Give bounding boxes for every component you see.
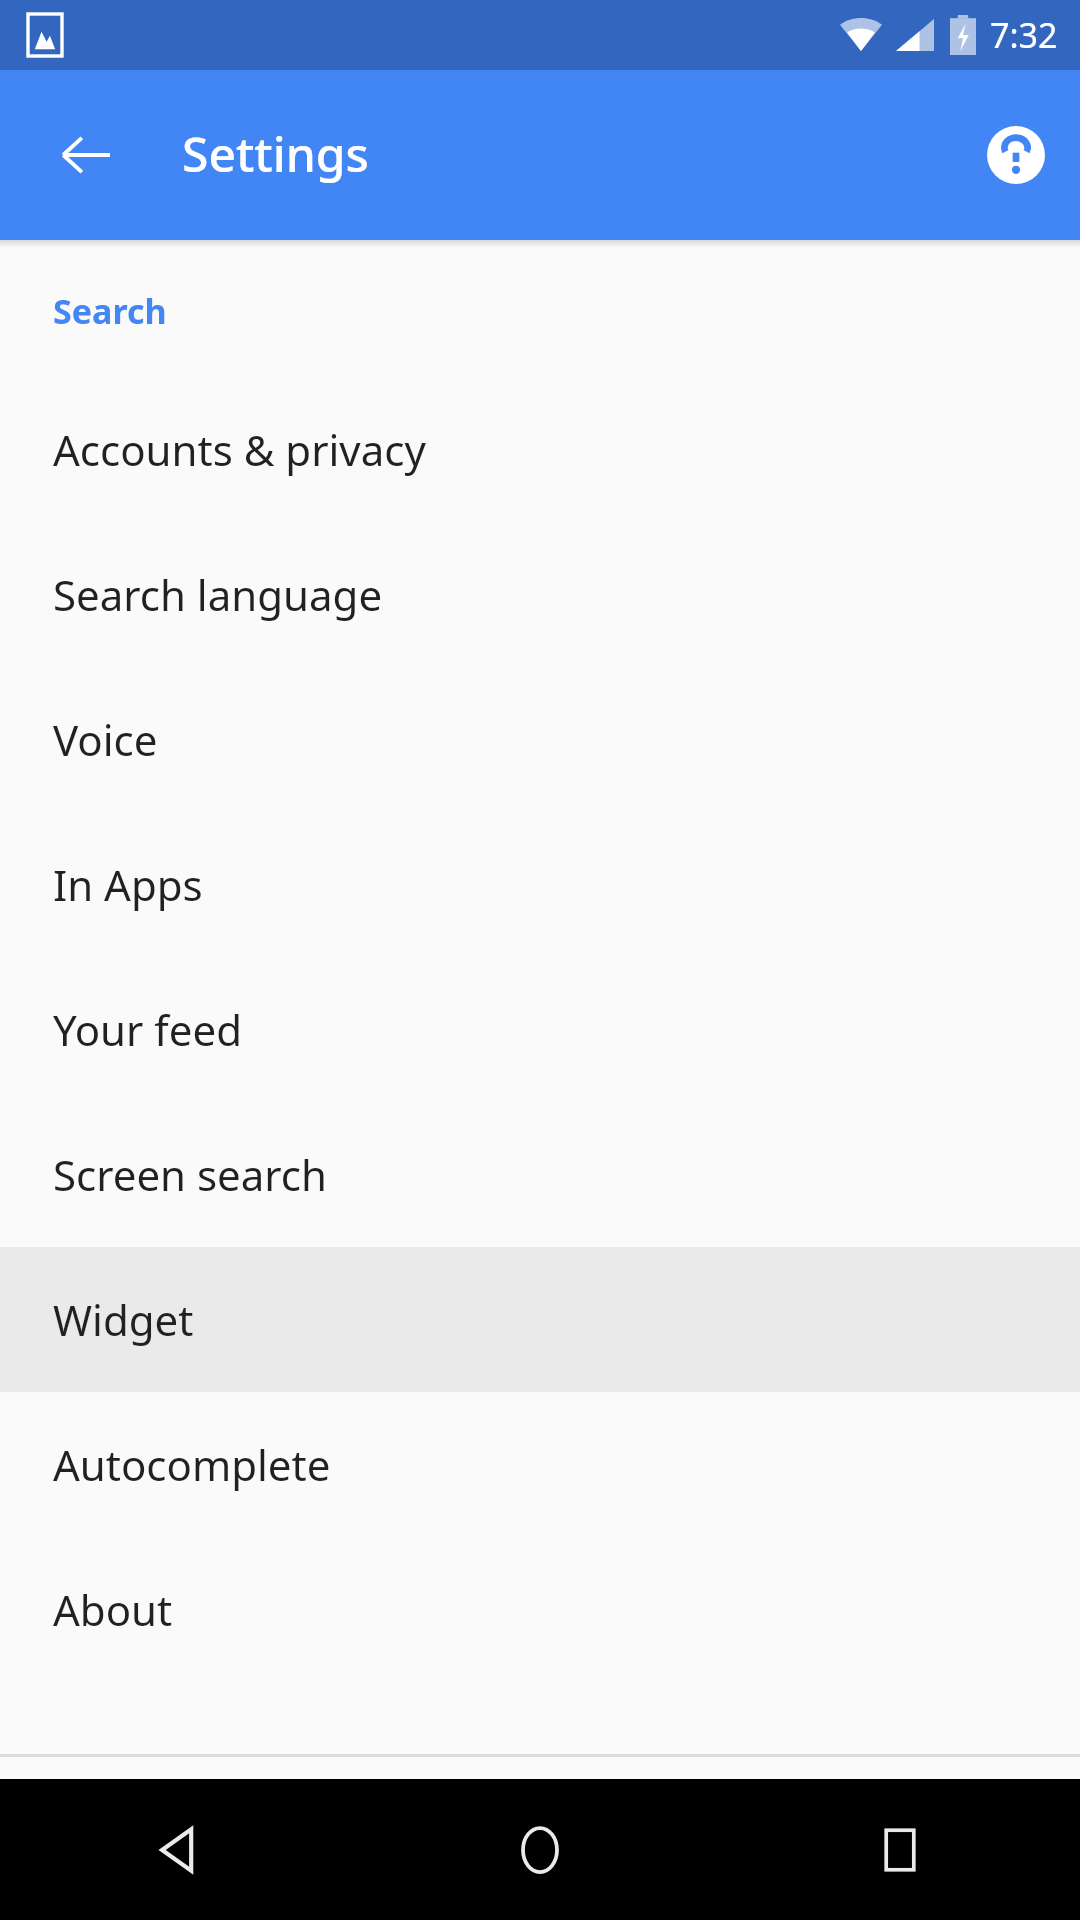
button[interactable]: Help	[968, 107, 1064, 203]
button[interactable]: Search language	[0, 522, 1080, 667]
staticText: Accounts & privacy	[53, 421, 426, 478]
button[interactable]: Autocomplete	[0, 1392, 1080, 1537]
button[interactable]: About	[0, 1537, 1080, 1682]
button[interactable]: Recent apps	[720, 1779, 1080, 1920]
staticText: Your feed	[53, 1001, 242, 1058]
button[interactable]: Accounts & privacy	[0, 377, 1080, 522]
button[interactable]: Voice	[0, 667, 1080, 812]
staticText: Search	[53, 288, 167, 334]
staticText: 7:32	[990, 12, 1058, 58]
staticText: Home screen	[53, 1839, 275, 1885]
staticText: Autocomplete	[53, 1436, 331, 1493]
button[interactable]: Widget	[0, 1247, 1080, 1392]
staticText: In Apps	[53, 856, 203, 913]
staticText: Settings	[182, 121, 369, 186]
staticText: Search language	[53, 566, 383, 623]
button[interactable]: In Apps	[0, 812, 1080, 957]
staticText: About	[53, 1581, 173, 1638]
button[interactable]: Your feed	[0, 957, 1080, 1102]
button[interactable]: Back	[38, 107, 134, 203]
button[interactable]: Home	[360, 1779, 720, 1920]
button[interactable]: Screen search	[0, 1102, 1080, 1247]
button[interactable]: Back	[0, 1779, 360, 1920]
staticText: Screen search	[53, 1146, 327, 1203]
staticText: Voice	[53, 711, 158, 768]
staticText: Widget	[53, 1291, 194, 1348]
